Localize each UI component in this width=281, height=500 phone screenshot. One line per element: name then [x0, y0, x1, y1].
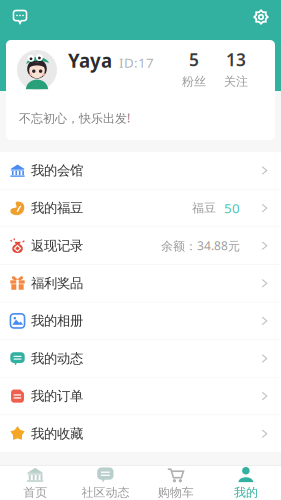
button[interactable]: 购物车	[140, 461, 211, 500]
staticText: ID:17	[119, 54, 154, 71]
button[interactable]: 我的动态	[0, 340, 281, 378]
staticText: 我的会馆	[31, 162, 83, 179]
button[interactable]: 我的	[211, 461, 281, 500]
staticText: 返现记录	[31, 237, 83, 254]
button[interactable]: 首页	[0, 461, 70, 500]
staticText: 粉丝	[182, 74, 206, 89]
staticText: 不忘初心，快乐出发!	[19, 110, 130, 126]
staticText: 购物车	[158, 485, 194, 500]
staticText: 我的订单	[31, 388, 83, 404]
staticText: 福豆	[192, 201, 216, 215]
staticText: 我的动态	[31, 350, 83, 367]
staticText: 社区动态	[81, 485, 129, 500]
staticText: 关注	[224, 74, 248, 89]
button[interactable]: 社区动态	[70, 461, 140, 500]
button[interactable]: 我的相册	[0, 302, 281, 340]
staticText: 我的	[234, 485, 258, 500]
staticText: 余额：34.88元	[161, 238, 240, 254]
staticText: Yaya	[68, 48, 112, 73]
staticText: 我的收藏	[31, 425, 83, 442]
button[interactable]: 福利奖品	[0, 265, 281, 302]
staticText: 5	[189, 48, 199, 71]
button[interactable]: 我的订单	[0, 378, 281, 415]
button[interactable]: 13	[213, 48, 255, 89]
staticText: 首页	[23, 485, 47, 500]
staticText: 我的福豆	[31, 200, 83, 216]
staticText: 50	[224, 199, 240, 217]
staticText: 福利奖品	[31, 275, 83, 291]
staticText: 13	[226, 48, 246, 71]
button[interactable]: 我的收藏	[0, 415, 281, 453]
button[interactable]: Messages	[9, 6, 31, 28]
button[interactable]: 返现记录	[0, 227, 281, 265]
staticText: 我的相册	[31, 313, 83, 329]
button[interactable]: 我的福豆	[0, 190, 281, 227]
button[interactable]: Settings	[250, 6, 272, 28]
button[interactable]: 5	[175, 48, 213, 89]
button[interactable]: 我的会馆	[0, 152, 281, 190]
